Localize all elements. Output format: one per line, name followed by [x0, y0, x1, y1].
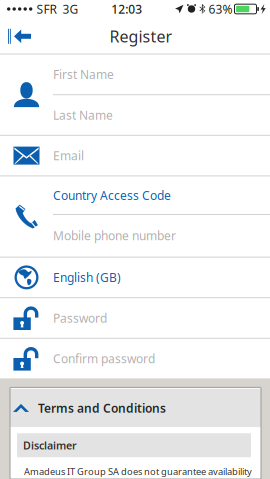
staticText: Confirm password	[53, 351, 155, 366]
button[interactable]: Terms and Conditions	[10, 389, 261, 427]
staticText: Amadeus IT Group SA does not guarantee a…	[24, 465, 252, 478]
staticText: Email	[53, 148, 84, 163]
button[interactable]: Confirm password	[53, 339, 270, 378]
staticText: Disclaimer	[23, 438, 77, 452]
staticText: Password	[53, 310, 107, 326]
button[interactable]: English (GB)	[53, 258, 270, 297]
staticText: Country Access Code	[53, 187, 171, 203]
staticText: 3G	[62, 1, 78, 17]
staticText: First Name	[53, 66, 114, 82]
button[interactable]: Last Name	[53, 95, 270, 135]
button[interactable]: Country Access Code	[53, 177, 270, 214]
button[interactable]: Back	[0, 19, 43, 54]
staticText: SFR	[36, 1, 56, 17]
staticText: Register	[109, 26, 172, 47]
staticText: English (GB)	[53, 269, 121, 285]
staticText: Mobile phone number	[53, 228, 176, 243]
staticText: Terms and Conditions	[38, 400, 166, 416]
button[interactable]: Password	[53, 298, 270, 338]
button[interactable]: Email	[53, 136, 270, 175]
button[interactable]: First Name	[53, 55, 270, 94]
staticText: Last Name	[53, 107, 113, 123]
staticText: 63%	[208, 1, 232, 17]
staticText: 12:03	[111, 1, 142, 17]
button[interactable]: Mobile phone number	[53, 215, 270, 256]
